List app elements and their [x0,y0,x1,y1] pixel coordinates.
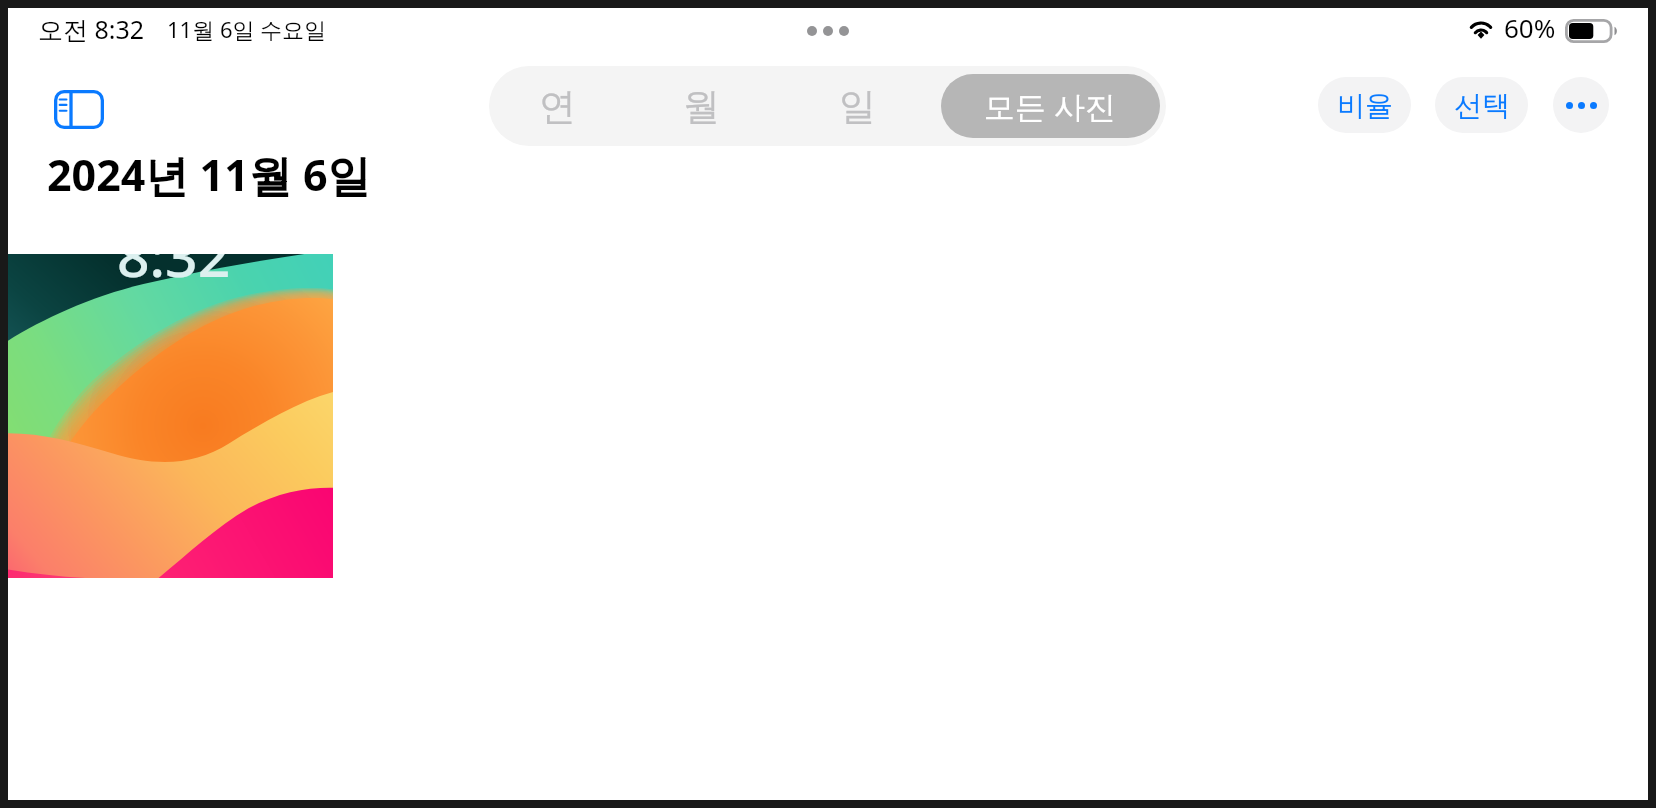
button[interactable]: 일 [778,66,936,146]
staticText: 오전 8:32 [38,12,145,46]
button[interactable]: 선택 [1435,77,1528,133]
staticText: 선택 [1454,88,1510,123]
button[interactable]: 비율 [1318,77,1411,133]
button[interactable]: 월 [625,66,778,146]
staticText: 일 [839,83,876,130]
staticText: 모든 사진 [984,85,1117,127]
staticText: 2024년 11월 6일 [47,145,371,204]
button[interactable]: Photo [8,254,333,578]
staticText: 11월 6일 수요일 [167,14,327,44]
button[interactable]: 모든 사진 [941,74,1160,138]
button[interactable]: 연 [489,66,625,146]
staticText: 8:32 [117,254,231,294]
staticText: 월 [683,83,720,130]
staticText: 60% [1504,10,1556,45]
button[interactable]: More options [1553,77,1609,133]
staticText: 비율 [1337,88,1393,123]
button[interactable]: Show sidebar [47,81,111,137]
staticText: 연 [539,83,576,130]
